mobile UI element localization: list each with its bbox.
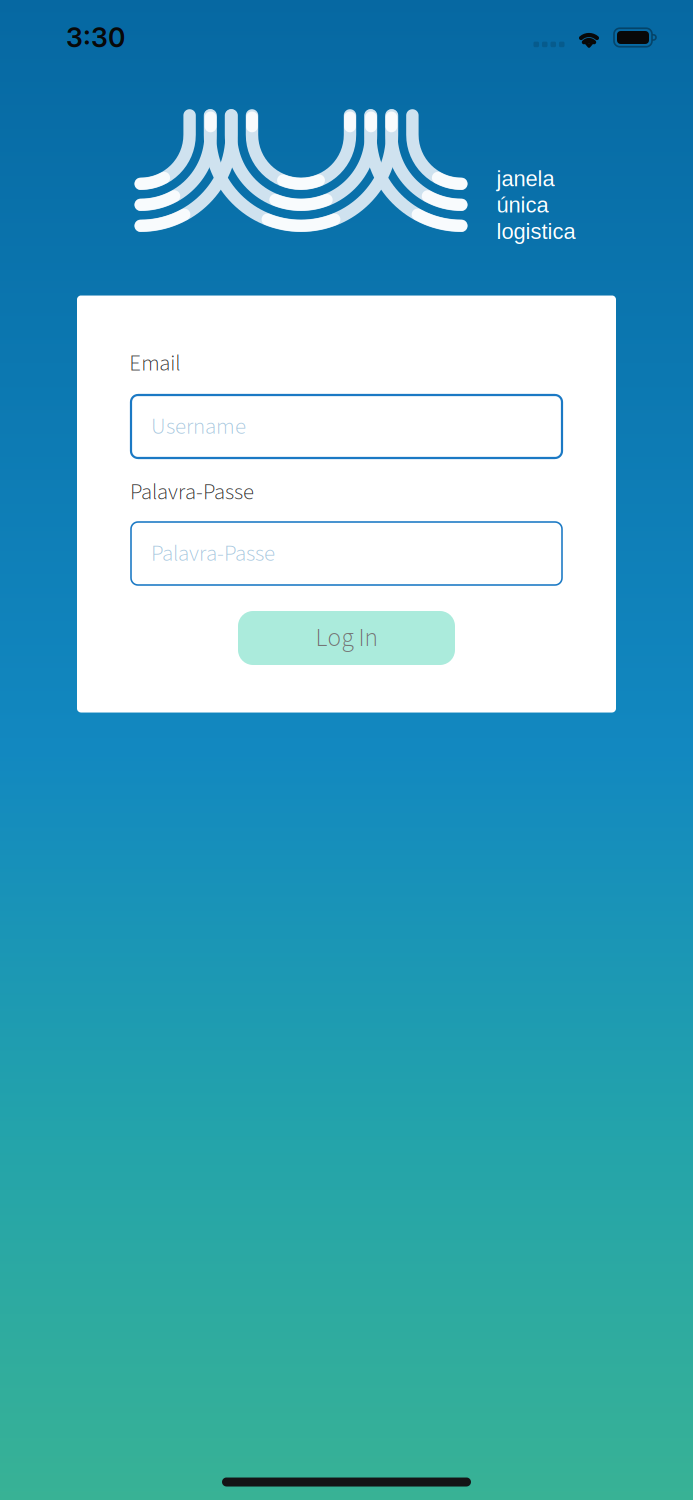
staticText: logistica: [496, 219, 575, 244]
staticText: Palavra-Passe: [130, 476, 254, 508]
button[interactable]: Log In: [238, 611, 455, 665]
staticText: janela: [496, 166, 554, 191]
staticText: Palavra-Passe: [151, 537, 275, 570]
button[interactable]: Username: [131, 395, 562, 458]
button[interactable]: Palavra-Passe: [131, 522, 562, 585]
staticText: Log In: [315, 620, 377, 656]
staticText: 3:30: [66, 21, 125, 54]
staticText: única: [496, 193, 548, 217]
staticText: Email: [129, 347, 180, 380]
staticText: Username: [151, 410, 246, 443]
